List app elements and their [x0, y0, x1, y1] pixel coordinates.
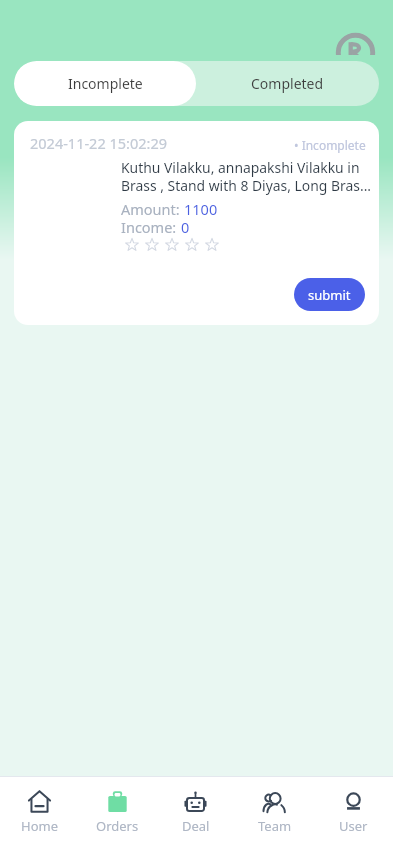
- button[interactable]: Home: [0, 777, 78, 851]
- staticText: Deal: [182, 817, 210, 835]
- button[interactable]: 2024-11-22 15:02:29: [14, 121, 379, 325]
- staticText: 1100: [184, 199, 218, 217]
- button[interactable]: submit: [294, 278, 365, 311]
- button[interactable]: User: [314, 777, 393, 851]
- staticText: 2024-11-22 15:02:29: [30, 133, 167, 153]
- staticText: Kuthu Vilakku, annapakshi Vilakku in Bra…: [121, 158, 372, 195]
- staticText: Orders: [96, 817, 139, 835]
- staticText: Incomplete: [68, 74, 143, 93]
- staticText: User: [339, 817, 368, 835]
- button[interactable]: Completed: [196, 61, 379, 106]
- button[interactable]: Deal: [156, 777, 235, 851]
- staticText: Team: [258, 817, 292, 835]
- button[interactable]: Incomplete: [14, 61, 196, 106]
- staticText: Amount:: [121, 199, 184, 217]
- staticText: 0: [181, 217, 190, 235]
- button[interactable]: Team: [235, 777, 314, 851]
- staticText: submit: [308, 286, 351, 304]
- button[interactable]: Orders: [78, 777, 156, 851]
- staticText: Home: [21, 817, 58, 835]
- staticText: Income:: [121, 217, 181, 235]
- staticText: Completed: [251, 74, 324, 93]
- staticText: • Incomplete: [294, 137, 366, 153]
